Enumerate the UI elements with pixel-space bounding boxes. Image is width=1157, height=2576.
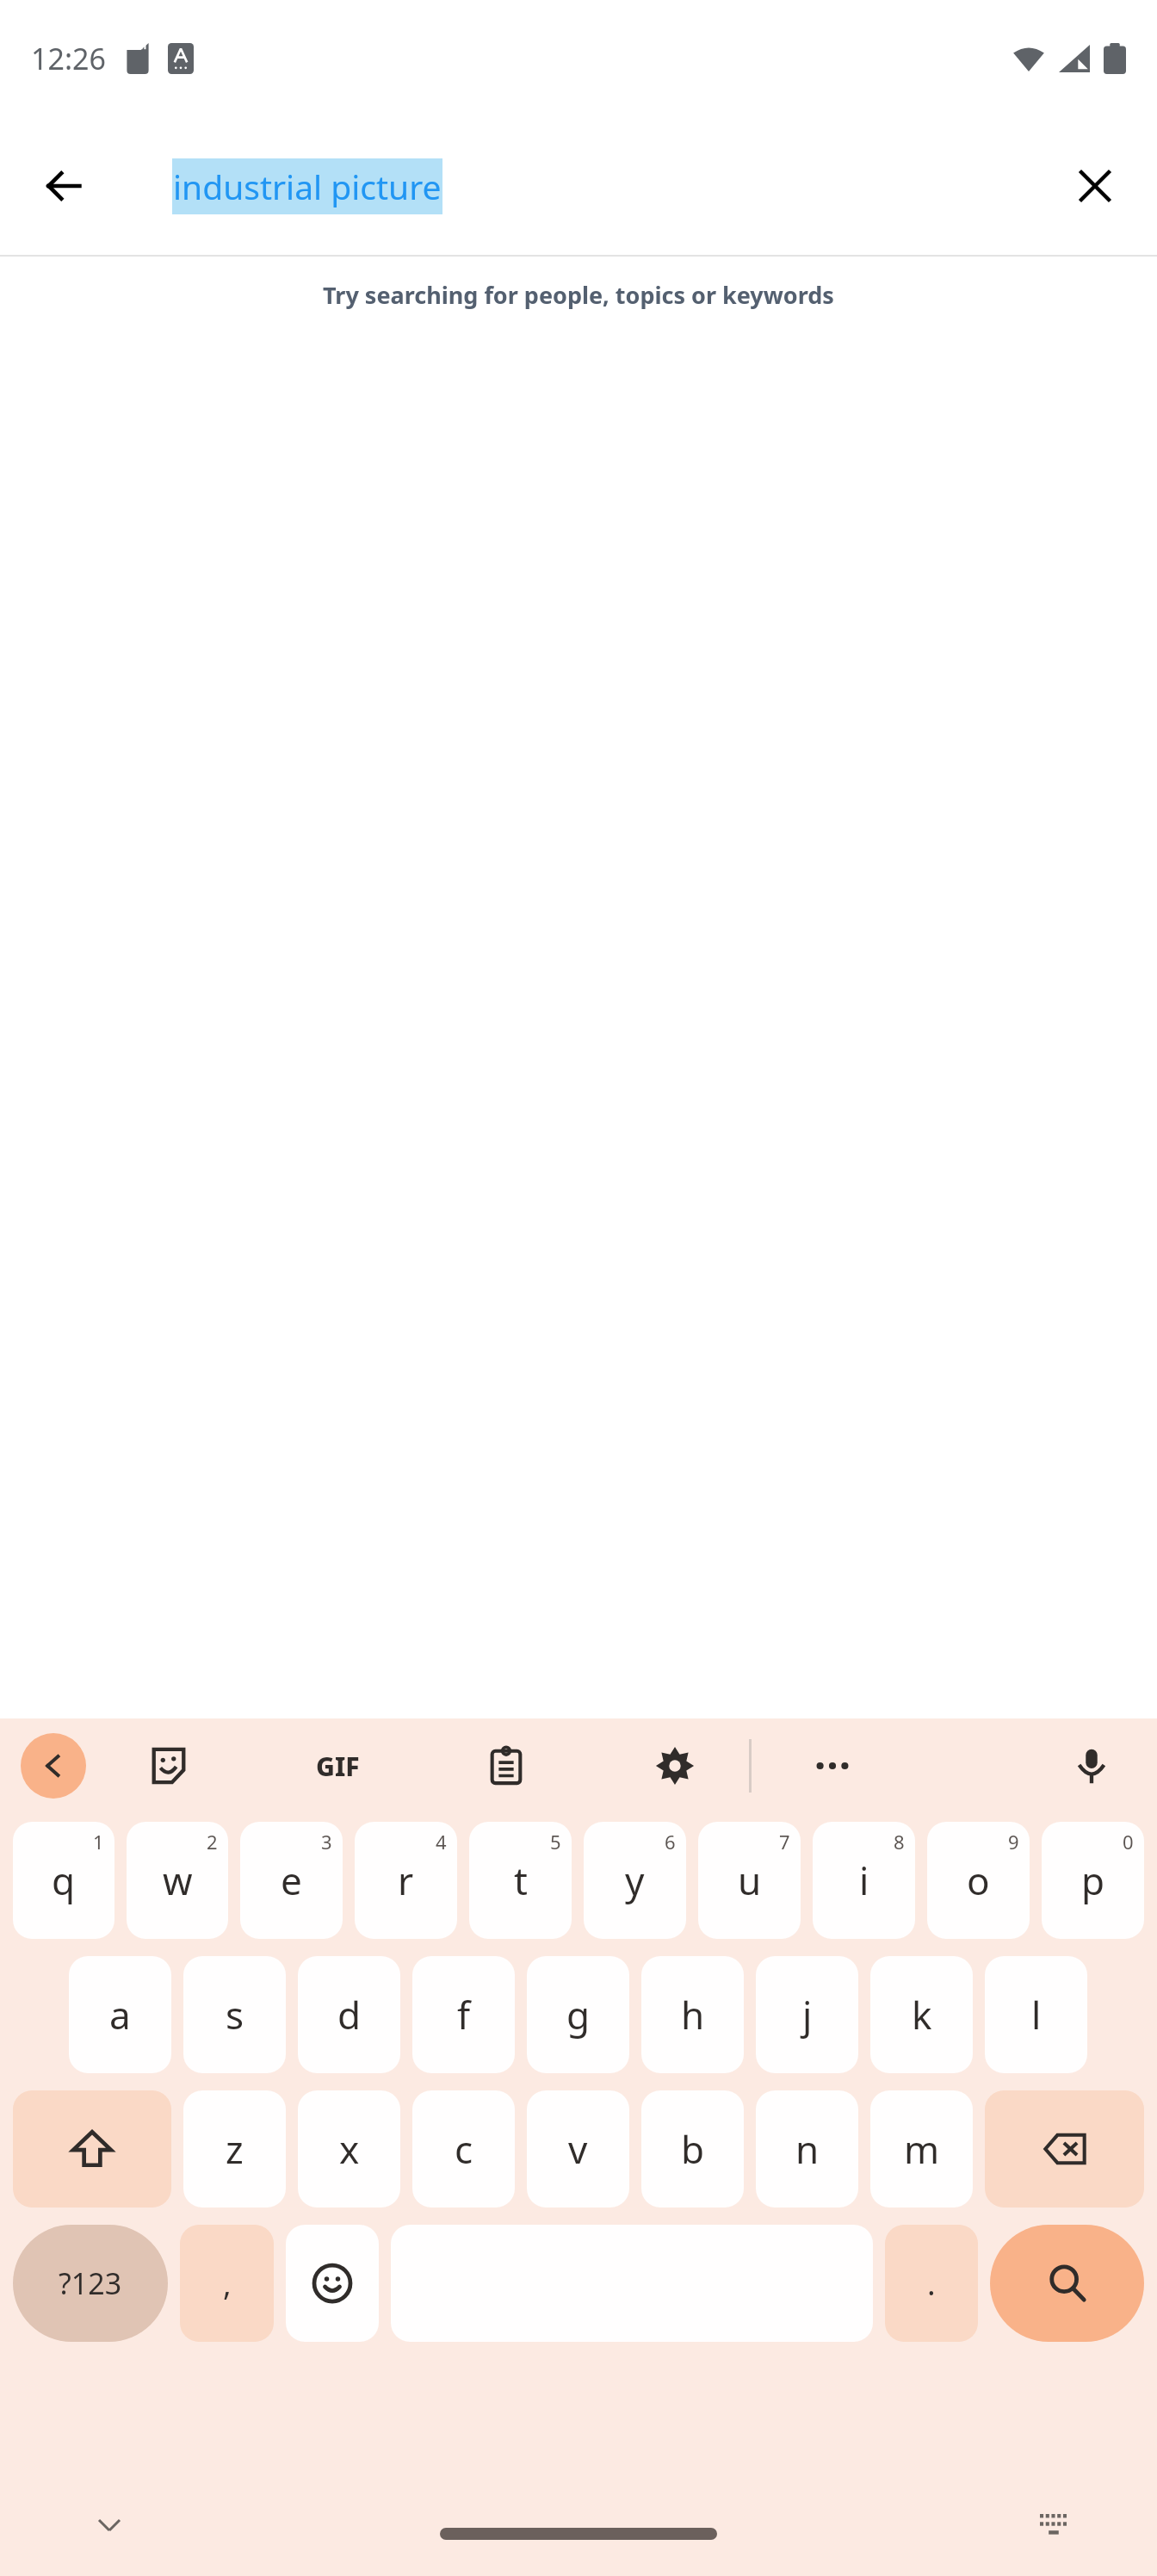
- staticText: s: [226, 1989, 244, 2040]
- staticText: .: [927, 2263, 936, 2305]
- button[interactable]: Back: [31, 153, 96, 219]
- staticText: i: [859, 1855, 869, 1906]
- staticText: m: [904, 2123, 940, 2175]
- staticText: ?123: [59, 2263, 122, 2303]
- button[interactable]: ,: [180, 2225, 274, 2342]
- staticText: 0: [1123, 1829, 1134, 1855]
- button[interactable]: GIF: [305, 1733, 370, 1799]
- button[interactable]: z: [183, 2090, 286, 2208]
- staticText: l: [1031, 1989, 1042, 2040]
- button[interactable]: Backspace: [985, 2090, 1144, 2208]
- staticText: ,: [223, 2263, 232, 2305]
- staticText: 9: [1008, 1829, 1019, 1855]
- button[interactable]: Collapse toolbar: [21, 1733, 86, 1799]
- staticText: e: [281, 1855, 302, 1906]
- button[interactable]: f: [412, 1956, 515, 2073]
- button[interactable]: v: [527, 2090, 629, 2208]
- staticText: x: [339, 2123, 360, 2175]
- button[interactable]: p: [1042, 1822, 1144, 1939]
- button[interactable]: a: [69, 1956, 171, 2073]
- button[interactable]: Emoji: [286, 2225, 379, 2342]
- staticText: industrial picture: [173, 164, 442, 209]
- button[interactable]: r: [355, 1822, 457, 1939]
- button[interactable]: .: [885, 2225, 978, 2342]
- button[interactable]: Clipboard: [473, 1733, 539, 1799]
- button[interactable]: Shift: [13, 2090, 171, 2208]
- button[interactable]: j: [756, 1956, 858, 2073]
- staticText: t: [514, 1855, 528, 1906]
- staticText: c: [455, 2123, 473, 2175]
- staticText: h: [681, 1989, 705, 2040]
- staticText: u: [738, 1855, 762, 1906]
- button[interactable]: l: [985, 1956, 1087, 2073]
- staticText: 3: [321, 1829, 332, 1855]
- button[interactable]: k: [870, 1956, 973, 2073]
- staticText: p: [1081, 1855, 1105, 1906]
- staticText: f: [457, 1989, 471, 2040]
- button[interactable]: d: [298, 1956, 400, 2073]
- button[interactable]: u: [698, 1822, 801, 1939]
- staticText: y: [625, 1855, 645, 1906]
- button[interactable]: m: [870, 2090, 973, 2208]
- staticText: r: [398, 1855, 414, 1906]
- staticText: g: [566, 1989, 591, 2040]
- staticText: 5: [550, 1829, 561, 1855]
- button[interactable]: q: [13, 1822, 114, 1939]
- button[interactable]: s: [183, 1956, 286, 2073]
- staticText: 1: [93, 1829, 104, 1855]
- staticText: b: [681, 2123, 705, 2175]
- staticText: 8: [894, 1829, 905, 1855]
- staticText: 2: [207, 1829, 218, 1855]
- staticText: z: [226, 2123, 244, 2175]
- button[interactable]: Search: [990, 2225, 1144, 2342]
- staticText: 7: [779, 1829, 790, 1855]
- staticText: q: [52, 1855, 76, 1906]
- button[interactable]: i: [813, 1822, 915, 1939]
- staticText: n: [795, 2123, 820, 2175]
- button[interactable]: ?123: [13, 2225, 168, 2342]
- button[interactable]: Voice input: [1059, 1733, 1124, 1799]
- button[interactable]: x: [298, 2090, 400, 2208]
- button[interactable]: More options: [800, 1733, 865, 1799]
- staticText: 4: [436, 1829, 447, 1855]
- staticText: GIF: [316, 1749, 360, 1784]
- button[interactable]: t: [469, 1822, 572, 1939]
- button[interactable]: e: [240, 1822, 343, 1939]
- button[interactable]: o: [927, 1822, 1030, 1939]
- staticText: 12:26: [31, 39, 106, 78]
- staticText: j: [802, 1989, 813, 2040]
- staticText: k: [912, 1989, 932, 2040]
- staticText: w: [163, 1855, 193, 1906]
- button[interactable]: c: [412, 2090, 515, 2208]
- button[interactable]: Stickers: [136, 1733, 201, 1799]
- staticText: d: [337, 1989, 362, 2040]
- button[interactable]: Switch keyboard: [1024, 2495, 1085, 2555]
- button[interactable]: b: [641, 2090, 744, 2208]
- staticText: 6: [665, 1829, 676, 1855]
- button[interactable]: Clear: [1062, 153, 1128, 219]
- staticText: Try searching for people, topics or keyw…: [0, 279, 1157, 311]
- button[interactable]: Hide keyboard: [79, 2495, 139, 2555]
- button[interactable]: industrial picture: [173, 164, 442, 209]
- staticText: o: [967, 1855, 990, 1906]
- button[interactable]: g: [527, 1956, 629, 2073]
- button[interactable]: n: [756, 2090, 858, 2208]
- button[interactable]: Settings: [642, 1733, 708, 1799]
- staticText: a: [109, 1989, 131, 2040]
- button[interactable]: w: [127, 1822, 228, 1939]
- button[interactable]: h: [641, 1956, 744, 2073]
- staticText: v: [568, 2123, 588, 2175]
- button[interactable]: y: [584, 1822, 686, 1939]
